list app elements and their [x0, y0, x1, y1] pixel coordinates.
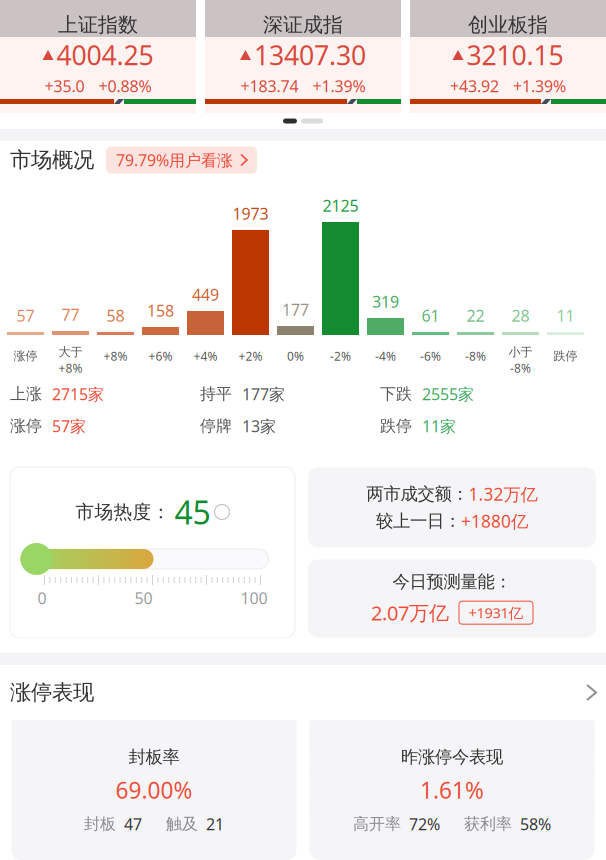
staticText: -8%	[465, 348, 486, 364]
staticText: +8%	[103, 348, 127, 364]
staticText: 涨停	[10, 416, 42, 436]
staticText: 69.00%	[115, 775, 192, 805]
staticText: 100	[240, 587, 267, 609]
button[interactable]: 封板率	[11, 720, 296, 860]
staticText: 50	[134, 587, 152, 609]
staticText: 市场概况	[10, 147, 94, 173]
staticText: 47	[124, 813, 142, 835]
staticText: 0	[37, 587, 46, 609]
staticText: 下跌	[380, 384, 412, 404]
staticText: 79.79%用户看涨	[116, 149, 233, 171]
staticText: +1.39%	[312, 75, 365, 97]
staticText: 72%	[409, 813, 440, 835]
staticText: +183.74	[240, 75, 298, 97]
staticText: 触及	[166, 814, 198, 834]
staticText: 涨停	[13, 349, 37, 363]
staticText: -4%	[375, 348, 396, 364]
button[interactable]: 79.79%用户看涨	[106, 146, 257, 173]
staticText: 21	[206, 813, 224, 835]
staticText: 61	[421, 305, 439, 326]
staticText: 深证成指	[263, 12, 343, 37]
staticText: 创业板指	[468, 12, 548, 37]
staticText: -8%	[510, 360, 531, 376]
staticText: 跌停	[380, 416, 412, 436]
staticText: 57家	[52, 415, 86, 437]
staticText: 11	[556, 305, 574, 326]
staticText: +8%	[58, 360, 82, 376]
staticText: 两市成交额：	[366, 483, 468, 505]
staticText: +0.88%	[98, 75, 151, 97]
staticText: 市场热度：	[75, 500, 170, 523]
staticText: -2%	[330, 348, 351, 364]
staticText: 158	[147, 300, 174, 321]
staticText: +43.92	[450, 75, 499, 97]
staticText: 今日预测量能：	[392, 571, 511, 592]
staticText: 2715家	[52, 383, 104, 405]
staticText: +1931亿	[468, 603, 523, 622]
button[interactable]: 昨涨停今表现	[309, 720, 594, 860]
staticText: 获利率	[464, 814, 512, 834]
button[interactable]: 深证成指	[205, 0, 401, 113]
staticText: 13家	[242, 415, 276, 437]
staticText: 2555家	[422, 383, 474, 405]
staticText: 449	[192, 284, 219, 305]
staticText: 高开率	[353, 814, 401, 834]
staticText: 77	[61, 304, 79, 325]
staticText: +2%	[238, 348, 262, 364]
staticText: 昨涨停今表现	[401, 746, 503, 768]
button[interactable]: 上证指数	[0, 0, 196, 113]
staticText: 小于	[508, 345, 532, 359]
staticText: +1880亿	[461, 509, 528, 532]
staticText: 上涨	[10, 384, 42, 404]
staticText: 4004.25	[56, 37, 153, 73]
staticText: 177家	[242, 383, 285, 405]
staticText: 上证指数	[58, 12, 138, 37]
staticText: 57	[16, 305, 34, 326]
staticText: -6%	[420, 348, 441, 364]
staticText: 45	[174, 491, 210, 533]
staticText: 58%	[520, 813, 551, 835]
staticText: 封板	[84, 814, 116, 834]
staticText: 较上一日：	[376, 510, 461, 532]
staticText: 0%	[287, 348, 304, 364]
staticText: 2.07万亿	[371, 599, 449, 626]
staticText: 11家	[422, 415, 456, 437]
staticText: 3210.15	[466, 37, 563, 73]
staticText: +6%	[148, 348, 172, 364]
staticText: +4%	[193, 348, 217, 364]
button[interactable]: 涨停表现	[0, 665, 606, 720]
staticText: 封板率	[128, 746, 179, 768]
staticText: 跌停	[553, 349, 577, 363]
staticText: 319	[372, 291, 399, 312]
staticText: 持平	[200, 384, 232, 404]
staticText: 58	[106, 305, 124, 326]
staticText: 停牌	[200, 416, 232, 436]
staticText: 28	[511, 305, 529, 326]
staticText: 大于	[58, 345, 82, 359]
staticText: 177	[282, 299, 309, 320]
staticText: 1.61%	[420, 775, 484, 805]
staticText: 1.32万亿	[468, 482, 537, 505]
staticText: 涨停表现	[10, 679, 94, 706]
button[interactable]: 创业板指	[410, 0, 606, 113]
staticText: 22	[466, 305, 484, 326]
staticText: +35.0	[44, 75, 84, 97]
staticText: 1973	[232, 203, 268, 224]
staticText: +1.39%	[513, 75, 566, 97]
staticText: 13407.30	[254, 37, 366, 73]
staticText: 2125	[322, 195, 358, 216]
